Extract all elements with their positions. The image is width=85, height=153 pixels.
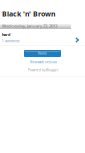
staticText: View web version xyxy=(30,60,57,64)
staticText: 1 comment: xyxy=(2,39,20,43)
staticText: Home xyxy=(38,51,47,55)
button[interactable]: Home xyxy=(24,50,61,57)
button[interactable]: Next xyxy=(75,37,80,43)
button[interactable]: View web version xyxy=(30,60,57,64)
staticText: Powered by Blogger. xyxy=(28,68,59,72)
staticText: hard xyxy=(2,32,10,37)
staticText: Black 'n' Brown xyxy=(2,9,56,18)
staticText: Wednesday, January 23, 2013 xyxy=(2,23,57,29)
button[interactable]: 1 comment: xyxy=(2,39,20,43)
